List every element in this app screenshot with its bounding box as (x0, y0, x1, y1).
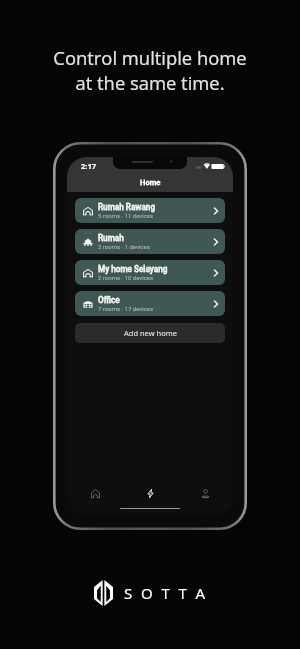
button[interactable]: Rumah Rawang (75, 198, 225, 223)
staticText: Rumah Rawang (98, 202, 156, 212)
staticText: Control multiple home at the same time. (53, 45, 247, 95)
button[interactable]: My home Selayang (75, 260, 225, 285)
button[interactable]: Profile (178, 482, 233, 504)
staticText: Office (98, 295, 120, 305)
staticText: Home (140, 178, 161, 187)
staticText: My home Selayang (98, 264, 168, 274)
staticText: 2 rooms · 1 devices (98, 243, 150, 250)
staticText: 5 rooms · 11 devices (98, 212, 154, 219)
staticText: 2:17 (81, 161, 96, 171)
staticText: Add new home (124, 328, 177, 338)
staticText: 2 rooms · 10 devices (98, 274, 154, 281)
button[interactable]: Automation (123, 482, 178, 504)
button[interactable]: Add new home (75, 323, 225, 343)
button[interactable]: Office (75, 291, 225, 316)
button[interactable]: Rumah (75, 229, 225, 254)
staticText: 7 rooms · 17 devices (98, 305, 154, 312)
button[interactable]: Home (67, 482, 123, 504)
staticText: Rumah (98, 233, 124, 243)
staticText: SOTTA (124, 583, 214, 603)
